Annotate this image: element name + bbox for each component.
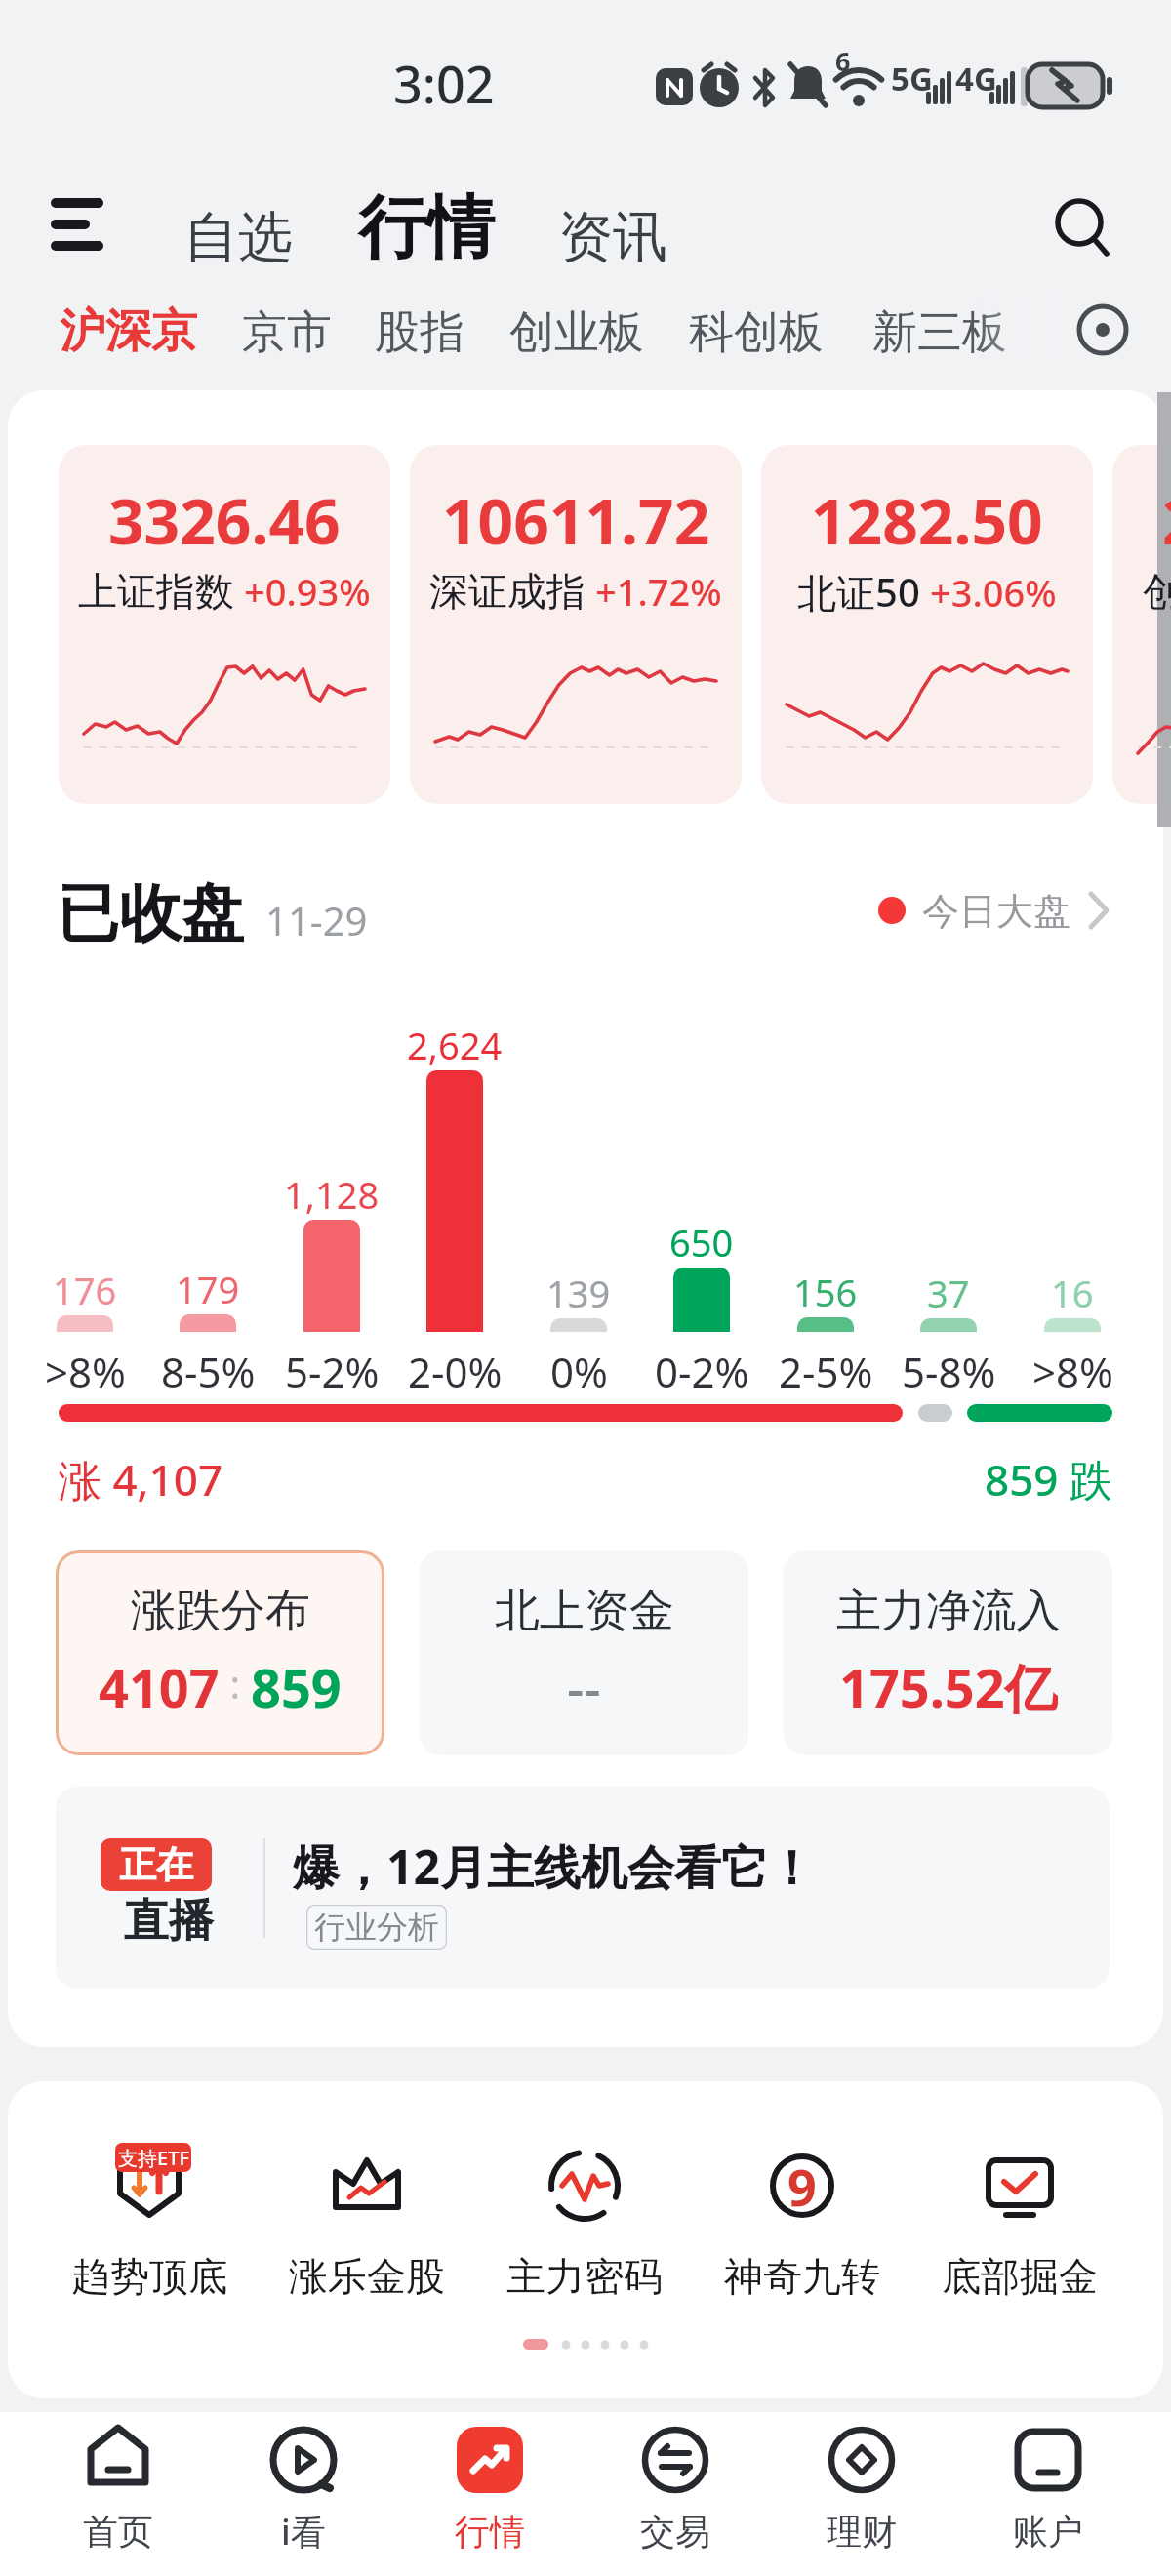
staticText: 10611.72 — [442, 478, 710, 556]
staticText: 156 — [793, 1267, 858, 1313]
staticText: 2261.73 — [1162, 478, 1171, 556]
staticText: 176 — [53, 1265, 117, 1311]
staticText: 16 — [1051, 1268, 1094, 1314]
staticText: 资讯 — [558, 203, 667, 272]
button[interactable] — [216, 2412, 391, 2576]
staticText: 139 — [546, 1268, 611, 1314]
staticText: 自选 — [183, 203, 293, 272]
button[interactable]: 科创板 — [685, 304, 828, 359]
staticText: 3:02 — [393, 49, 495, 113]
button[interactable] — [402, 2412, 578, 2576]
staticText: 北上资金 — [495, 1583, 674, 1637]
button[interactable]: 沪深京 — [57, 302, 199, 359]
button[interactable]: 京市 — [240, 304, 334, 359]
button[interactable] — [410, 445, 742, 804]
button[interactable]: 新三板 — [868, 304, 1011, 359]
button[interactable]: 股指 — [373, 304, 466, 359]
button[interactable] — [1046, 191, 1120, 265]
staticText: +1.72% — [595, 566, 722, 617]
staticText: >8% — [45, 1344, 126, 1394]
staticText: 650 — [669, 1217, 734, 1264]
staticText: 0% — [550, 1344, 608, 1394]
staticText: 行业分析 — [314, 1908, 439, 1947]
staticText: i看 — [281, 2508, 326, 2555]
staticText: >8% — [1032, 1344, 1113, 1394]
staticText: 5G — [891, 57, 933, 96]
staticText: 0-2% — [655, 1344, 749, 1394]
staticText: 涨跌分布 — [131, 1583, 310, 1637]
staticText: 上证指数 — [78, 567, 234, 616]
staticText: 直播 — [124, 1893, 214, 1950]
staticText: 2-5% — [779, 1344, 873, 1394]
button[interactable] — [420, 1550, 748, 1755]
staticText: 账户 — [1013, 2510, 1083, 2554]
staticText: 2-0% — [408, 1344, 503, 1394]
staticText: 859 — [251, 1651, 342, 1715]
staticText: 4107 — [99, 1651, 220, 1715]
staticText: 理财 — [827, 2510, 897, 2554]
staticText: 北证50 — [797, 565, 920, 619]
staticText: -- — [567, 1651, 601, 1715]
staticText: 创业板指 — [1143, 567, 1171, 616]
staticText: 爆，12月主线机会看它！ — [293, 1834, 815, 1891]
button[interactable] — [47, 2127, 252, 2313]
staticText: 趋势顶底 — [71, 2252, 227, 2299]
button[interactable] — [784, 1550, 1112, 1755]
staticText: 1282.50 — [811, 478, 1043, 556]
staticText: 行情 — [358, 185, 495, 271]
staticText: 9 — [787, 2152, 817, 2221]
staticText: 已收盘 — [57, 874, 244, 952]
button[interactable] — [761, 445, 1093, 804]
staticText: 主力净流入 — [836, 1583, 1061, 1637]
staticText: 支持ETF — [118, 2145, 189, 2171]
button[interactable] — [774, 2412, 949, 2576]
button[interactable] — [960, 2412, 1136, 2576]
staticText: +3.06% — [930, 567, 1057, 618]
staticText: 新三板 — [872, 304, 1007, 359]
staticText: 3326.46 — [108, 478, 341, 556]
staticText: : — [220, 1657, 251, 1710]
button[interactable] — [54, 195, 102, 254]
staticText: 179 — [176, 1264, 240, 1310]
staticText: 神奇九转 — [724, 2252, 880, 2299]
button[interactable] — [482, 2127, 687, 2313]
button[interactable] — [56, 1787, 1110, 1989]
staticText: 股指 — [375, 304, 464, 359]
staticText: 37 — [927, 1268, 970, 1314]
staticText: 行情 — [455, 2510, 525, 2554]
staticText: 859 跌 — [985, 1450, 1112, 1507]
button[interactable] — [30, 2412, 206, 2576]
staticText: +0.93% — [244, 566, 371, 617]
button[interactable]: 行情 — [340, 181, 513, 275]
button[interactable] — [1075, 299, 1136, 359]
staticText: 首页 — [83, 2510, 153, 2554]
staticText: 创业板 — [509, 304, 644, 359]
button[interactable] — [859, 878, 1112, 946]
button[interactable] — [59, 445, 390, 804]
staticText: 6 — [835, 43, 851, 74]
staticText: 涨 4,107 — [59, 1450, 223, 1507]
button[interactable]: 自选 — [176, 199, 301, 275]
button[interactable] — [264, 2127, 469, 2313]
staticText: 交易 — [640, 2510, 710, 2554]
button[interactable] — [587, 2412, 763, 2576]
staticText: 11-29 — [265, 894, 368, 943]
staticText: 底部掘金 — [942, 2252, 1098, 2299]
button[interactable]: 创业板 — [505, 304, 648, 359]
staticText: 科创板 — [689, 304, 824, 359]
staticText: 4G — [955, 57, 997, 96]
staticText: 8-5% — [161, 1344, 256, 1394]
button[interactable] — [700, 2127, 905, 2313]
staticText: 5-8% — [902, 1344, 996, 1394]
staticText: 主力密码 — [506, 2252, 663, 2299]
staticText: 1,128 — [284, 1169, 380, 1216]
button[interactable] — [917, 2127, 1122, 2313]
staticText: 今日大盘 — [922, 888, 1070, 935]
staticText: 京市 — [242, 304, 332, 359]
staticText: 沪深京 — [60, 302, 197, 359]
staticText: 2,624 — [407, 1020, 503, 1067]
button[interactable]: 资讯 — [550, 199, 675, 275]
staticText: 深证成指 — [429, 567, 585, 616]
staticText: 正在 — [119, 1841, 193, 1888]
button[interactable] — [56, 1550, 384, 1755]
